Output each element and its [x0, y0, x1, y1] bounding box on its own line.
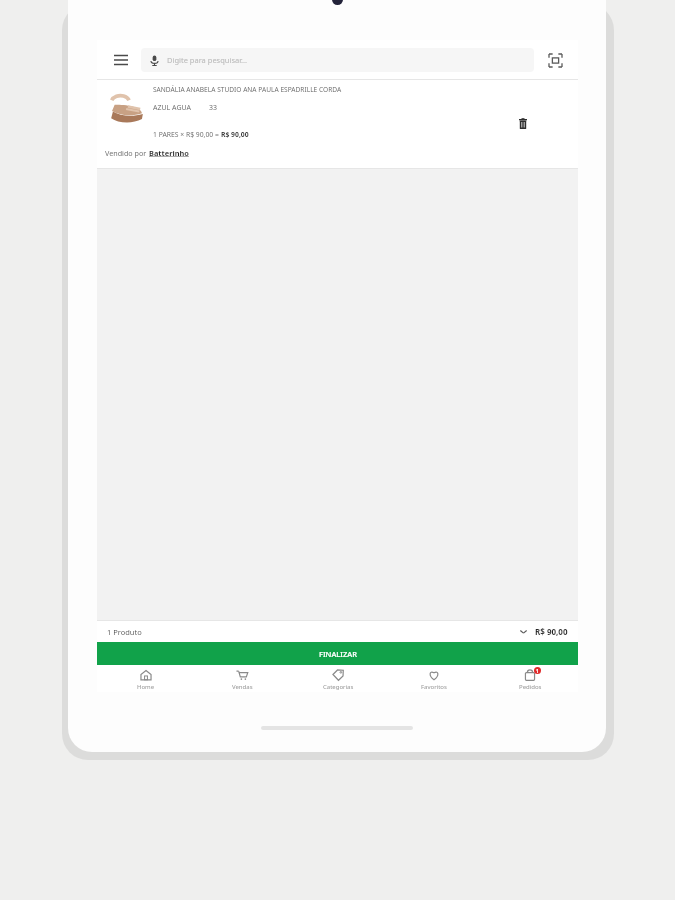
button[interactable]: Home [97, 665, 194, 692]
staticText: Batterinho [149, 148, 189, 158]
button[interactable]: Menu [108, 47, 134, 73]
button[interactable]: Vendas [194, 665, 290, 692]
button[interactable]: Categorias [290, 665, 386, 692]
staticText: Pedidos [519, 683, 542, 691]
staticText: Categorias [323, 683, 354, 691]
button[interactable]: SANDÁLIA ANABELA STUDIO ANA PAULA ESPADR… [97, 80, 578, 168]
staticText: 33 [209, 103, 218, 113]
button[interactable]: Scanner [543, 48, 567, 72]
button[interactable]: Digite para pesquisar... [141, 48, 534, 72]
staticText: Vendido por [105, 148, 149, 158]
button[interactable]: Favoritos [386, 665, 482, 692]
staticText: Home [137, 683, 155, 691]
button[interactable]: Remover item [512, 113, 534, 135]
staticText: 1 [536, 668, 539, 674]
button[interactable]: 1 [482, 665, 578, 692]
button[interactable]: 1 Produto [97, 621, 578, 642]
button[interactable]: FINALIZAR [97, 642, 578, 665]
staticText: R$ 90,00 [535, 626, 568, 637]
staticText: Vendas [232, 683, 253, 691]
staticText: Favoritos [421, 683, 447, 691]
staticText: 1 PARES × R$ 90,00 = [153, 130, 221, 139]
staticText: SANDÁLIA ANABELA STUDIO ANA PAULA ESPADR… [153, 85, 342, 94]
staticText: Digite para pesquisar... [167, 55, 248, 65]
staticText: 1 Produto [107, 627, 142, 637]
staticText: FINALIZAR [319, 649, 357, 659]
staticText: AZUL AGUA [153, 103, 192, 113]
staticText: R$ 90,00 [221, 130, 249, 139]
